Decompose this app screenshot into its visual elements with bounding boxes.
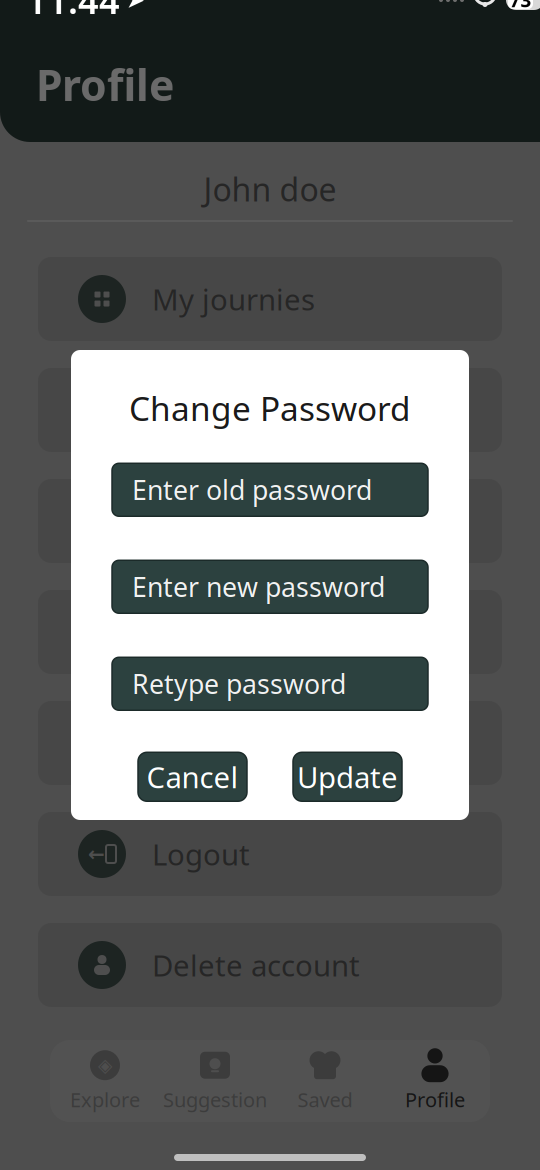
staticText: ← [88,843,105,865]
staticText: My journies [152,279,315,318]
staticText: Update [297,757,398,796]
staticText: 73 [509,0,531,12]
staticText: Logout [152,834,250,873]
button[interactable]: Enter old password [112,463,428,516]
button[interactable]: ← [38,812,502,896]
button[interactable]: Delete account [38,923,502,1007]
staticText: Profile [36,56,174,113]
button[interactable] [38,701,502,785]
button[interactable]: Suggestion [160,1045,270,1117]
staticText: Retype password [132,666,346,701]
staticText: Enter old password [132,472,372,507]
staticText: Cancel [146,757,238,796]
staticText: Explore [70,1086,140,1113]
staticText: Change Password [129,386,411,430]
staticText: 11:44 [26,0,120,24]
button[interactable]: Cancel [138,752,247,801]
button[interactable]: Retype password [112,657,428,710]
staticText: Enter new password [132,569,385,604]
staticText: Suggestion [163,1086,267,1113]
staticText: ➤ [126,0,145,13]
button[interactable]: Update [293,752,402,801]
button[interactable]: Enter new password [112,560,428,613]
staticText: Profile [405,1086,465,1113]
staticText: Saved [297,1086,352,1113]
button[interactable] [38,590,502,674]
staticText: Delete account [152,945,360,984]
button[interactable] [38,479,502,563]
button[interactable]: ◈ [50,1045,160,1117]
button[interactable]: Saved [270,1045,380,1117]
staticText: ◈ [98,1055,112,1076]
button[interactable]: Profile [380,1045,490,1117]
button[interactable]: My journies [38,257,502,341]
button[interactable] [38,368,502,452]
staticText: John doe [203,168,336,210]
